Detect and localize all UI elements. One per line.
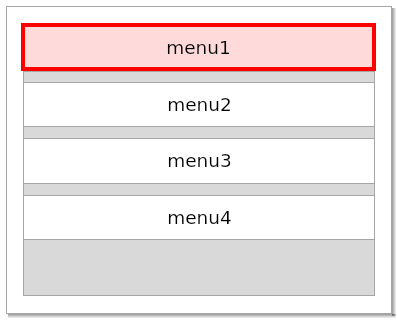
staticText: menu2 xyxy=(167,94,232,116)
button[interactable]: menu4 xyxy=(23,196,375,239)
staticText: menu4 xyxy=(167,207,232,229)
button[interactable]: menu3 xyxy=(23,139,375,183)
button[interactable]: menu2 xyxy=(23,83,375,126)
button[interactable]: menu1 xyxy=(21,23,376,71)
staticText: menu3 xyxy=(167,150,232,172)
staticText: menu1 xyxy=(166,37,231,59)
